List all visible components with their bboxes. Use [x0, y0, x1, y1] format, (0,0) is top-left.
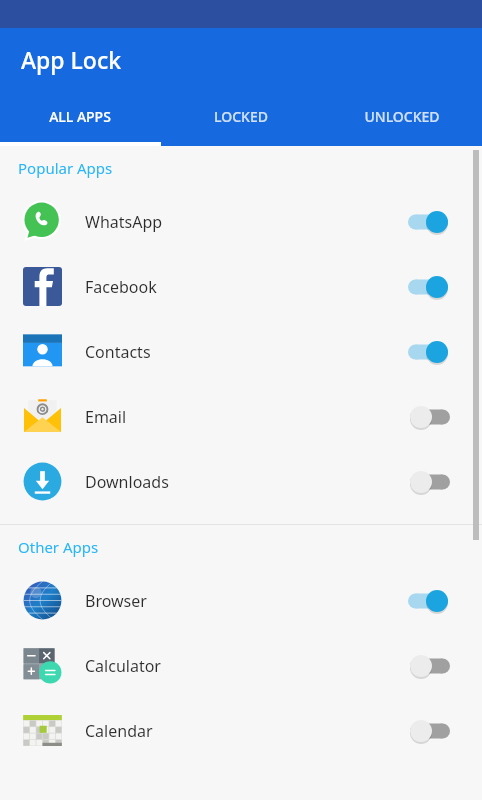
staticText: Calendar	[85, 720, 406, 742]
button[interactable]: Downloads	[0, 449, 482, 514]
button[interactable]: Calculator	[0, 633, 482, 698]
staticText: WhatsApp	[85, 211, 406, 233]
staticText: ALL APPS	[49, 107, 111, 126]
button[interactable]: Contacts	[0, 319, 482, 384]
button[interactable]: Locked toggle on	[406, 337, 452, 367]
button[interactable]: Locked toggle off	[406, 467, 452, 497]
button[interactable]: LOCKED	[160, 90, 321, 142]
staticText: Popular Apps	[18, 158, 113, 178]
staticText: LOCKED	[214, 107, 268, 126]
button[interactable]: WhatsApp	[0, 189, 482, 254]
staticText: Downloads	[85, 471, 406, 493]
button[interactable]: Facebook	[0, 254, 482, 319]
staticText: UNLOCKED	[364, 107, 440, 126]
button[interactable]: Locked toggle on	[406, 207, 452, 237]
button[interactable]: Locked toggle off	[406, 402, 452, 432]
staticText: Other Apps	[18, 537, 99, 557]
button[interactable]: Locked toggle on	[406, 586, 452, 616]
button[interactable]: Locked toggle off	[406, 651, 452, 681]
staticText: Facebook	[85, 276, 406, 298]
staticText: Email	[85, 406, 406, 428]
button[interactable]: ALL APPS	[0, 90, 160, 142]
staticText: Calculator	[85, 655, 406, 677]
button[interactable]: UNLOCKED	[321, 90, 482, 142]
staticText: Contacts	[85, 341, 406, 363]
button[interactable]: Locked toggle on	[406, 272, 452, 302]
button[interactable]: Locked toggle off	[406, 716, 452, 746]
button[interactable]: Calendar	[0, 698, 482, 763]
staticText: App Lock	[21, 44, 122, 75]
staticText: Browser	[85, 590, 406, 612]
button[interactable]: Email	[0, 384, 482, 449]
button[interactable]: Browser	[0, 568, 482, 633]
